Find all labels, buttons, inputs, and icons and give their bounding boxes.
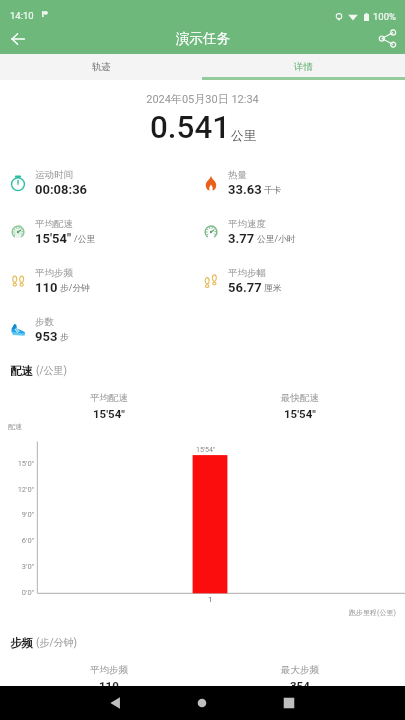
staticText: 千卡 bbox=[264, 185, 282, 196]
staticText: 厘米 bbox=[264, 283, 282, 294]
staticText: /公里 bbox=[74, 234, 96, 245]
staticText: 平均速度 bbox=[228, 218, 266, 230]
button[interactable]: Back bbox=[104, 686, 128, 720]
staticText: 公里 bbox=[231, 128, 256, 144]
button[interactable]: Recent apps bbox=[277, 686, 301, 720]
button[interactable]: Share bbox=[375, 26, 400, 51]
staticText: 跑步里程(公里) bbox=[349, 608, 396, 617]
staticText: 110 bbox=[99, 679, 119, 692]
staticText: 33.63 bbox=[228, 182, 262, 197]
staticText: 6'0" bbox=[0, 536, 34, 545]
staticText: 运动时间 bbox=[35, 169, 73, 181]
staticText: 1 bbox=[208, 595, 213, 604]
staticText: 15'54" bbox=[284, 407, 316, 420]
staticText: 公里/小时 bbox=[257, 234, 296, 245]
staticText: 15'54" bbox=[196, 446, 216, 454]
staticText: 配速 bbox=[10, 364, 33, 378]
staticText: 最大步频 bbox=[281, 664, 319, 676]
button[interactable]: 详情 bbox=[202, 54, 405, 80]
staticText: 12'0" bbox=[0, 485, 34, 494]
staticText: 热量 bbox=[228, 169, 247, 181]
staticText: 步/分钟 bbox=[60, 283, 91, 294]
staticText: 953 bbox=[35, 329, 58, 344]
staticText: 步 bbox=[60, 332, 69, 343]
staticText: 步数 bbox=[35, 316, 54, 328]
staticText: 平均配速 bbox=[90, 392, 128, 404]
button[interactable]: Home bbox=[190, 686, 214, 720]
button[interactable]: 轨迹 bbox=[0, 54, 202, 80]
staticText: 平均配速 bbox=[35, 218, 73, 230]
staticText: 演示任务 bbox=[176, 30, 230, 47]
staticText: 3.77 bbox=[228, 231, 255, 246]
staticText: 0'0" bbox=[0, 588, 34, 597]
staticText: 平均步频 bbox=[35, 267, 73, 279]
staticText: 15'54" bbox=[93, 407, 125, 420]
staticText: 100% bbox=[373, 11, 396, 22]
staticText: (步/分钟) bbox=[36, 636, 78, 649]
staticText: (/公里) bbox=[36, 364, 68, 377]
staticText: 110 bbox=[35, 280, 58, 295]
staticText: 0.541 bbox=[150, 109, 231, 146]
staticText: 步频 bbox=[10, 636, 33, 650]
staticText: 354 bbox=[290, 679, 310, 692]
staticText: 2024年05月30日 12:34 bbox=[0, 92, 405, 106]
staticText: 14:10 bbox=[10, 10, 34, 21]
staticText: 9'0" bbox=[0, 510, 34, 519]
button[interactable]: Back bbox=[5, 26, 30, 51]
staticText: 详情 bbox=[294, 61, 313, 73]
staticText: 56.77 bbox=[228, 280, 262, 295]
staticText: 轨迹 bbox=[92, 61, 111, 73]
staticText: 15'54" bbox=[35, 231, 72, 246]
staticText: 平均步幅 bbox=[228, 267, 266, 279]
staticText: 配速 bbox=[8, 422, 22, 431]
staticText: 3'0" bbox=[0, 562, 34, 571]
staticText: 15'0" bbox=[0, 459, 34, 468]
staticText: 平均步频 bbox=[90, 664, 128, 676]
staticText: 最快配速 bbox=[281, 392, 319, 404]
staticText: 00:08:36 bbox=[35, 182, 88, 197]
